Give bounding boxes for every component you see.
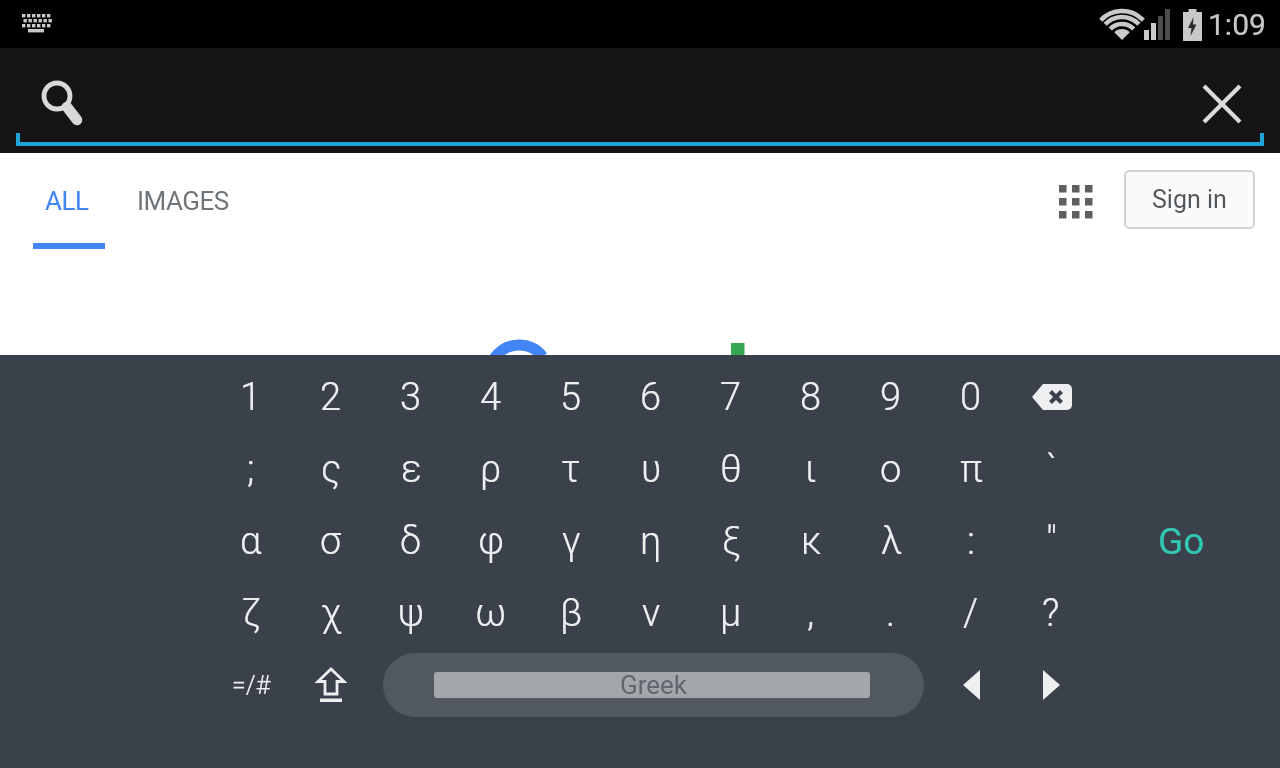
button[interactable]: Greek [383,653,924,717]
button[interactable]: ξ [691,505,771,577]
staticText: β [560,591,583,636]
staticText: τ [561,447,581,492]
staticText: / [963,591,979,636]
staticText: 6 [640,375,662,420]
button[interactable] [1059,185,1093,219]
button[interactable] [1011,361,1091,433]
button[interactable]: σ [291,505,371,577]
staticText: ω [475,591,507,636]
staticText: " [1046,519,1057,564]
button[interactable]: φ [451,505,531,577]
button[interactable]: IMAGES [130,178,235,224]
button[interactable]: π [931,433,1011,505]
staticText: 7 [720,375,742,420]
button[interactable]: ` [1011,433,1091,505]
button[interactable]: 5 [531,361,611,433]
staticText: η [640,519,662,564]
button[interactable] [1011,649,1091,721]
button[interactable]: μ [691,577,771,649]
staticText: 5 [560,375,582,420]
button[interactable]: 8 [771,361,851,433]
staticText: ς [321,447,342,492]
staticText: θ [720,447,742,492]
button[interactable]: " [1011,505,1091,577]
button[interactable]: 1 [211,361,291,433]
button[interactable]: β [531,577,611,649]
button[interactable]: χ [291,577,371,649]
button[interactable]: Go [1141,505,1221,577]
button[interactable] [931,649,1011,721]
staticText: ζ [242,591,261,636]
button[interactable]: : [931,505,1011,577]
staticText: =/# [232,671,271,700]
staticText: ` [1046,447,1057,492]
button[interactable]: η [611,505,691,577]
staticText: ψ [398,591,424,636]
staticText: μ [720,591,742,636]
button[interactable]: ν [611,577,691,649]
button[interactable]: 2 [291,361,371,433]
staticText: ν [642,591,661,636]
button[interactable]: 7 [691,361,771,433]
button[interactable]: 0 [931,361,1011,433]
button[interactable] [1204,86,1240,122]
button[interactable]: ψ [371,577,451,649]
staticText: : [967,519,975,564]
staticText: υ [641,447,662,492]
button[interactable]: . [851,577,931,649]
staticText: , [807,591,815,636]
button[interactable]: ; [211,433,291,505]
button[interactable]: λ [851,505,931,577]
button[interactable]: , [771,577,851,649]
button[interactable]: κ [771,505,851,577]
staticText: Sign in [1152,185,1227,214]
button[interactable]: τ [531,433,611,505]
staticText: 0 [960,375,982,420]
button[interactable]: Sign in [1124,170,1255,229]
staticText: π [960,447,983,492]
button[interactable]: 6 [611,361,691,433]
staticText: α [240,519,262,564]
button[interactable]: ς [291,433,371,505]
staticText: Go [1158,520,1205,563]
button[interactable]: ? [1011,577,1091,649]
button[interactable]: ρ [451,433,531,505]
staticText: ο [880,447,902,492]
button[interactable]: δ [371,505,451,577]
button[interactable]: ο [851,433,931,505]
staticText: Greek [620,670,688,700]
staticText: φ [478,519,505,564]
staticText: ε [401,447,422,492]
button[interactable]: 9 [851,361,931,433]
staticText: IMAGES [137,186,229,216]
button[interactable]: υ [611,433,691,505]
button[interactable]: α [211,505,291,577]
button[interactable]: =/# [211,649,291,721]
button[interactable]: 3 [371,361,451,433]
button[interactable]: ε [371,433,451,505]
button[interactable]: ω [451,577,531,649]
staticText: χ [321,591,342,636]
staticText: ? [1042,591,1060,636]
button[interactable] [0,48,1280,153]
staticText: 1:09 [1208,7,1266,42]
staticText: ALL [45,186,89,216]
staticText: . [886,591,896,636]
staticText: ξ [722,519,741,564]
button[interactable]: ζ [211,577,291,649]
button[interactable]: ι [771,433,851,505]
staticText: ; [247,447,255,492]
staticText: κ [801,519,822,564]
staticText: ι [805,447,817,492]
staticText: δ [400,519,422,564]
button[interactable] [291,649,371,721]
staticText: 8 [800,375,822,420]
button[interactable]: γ [531,505,611,577]
staticText: 1 [240,375,262,420]
button[interactable]: θ [691,433,771,505]
button[interactable]: ALL [31,178,103,224]
button[interactable]: 4 [451,361,531,433]
staticText: ρ [480,447,502,492]
staticText: 3 [400,375,422,420]
button[interactable]: / [931,577,1011,649]
